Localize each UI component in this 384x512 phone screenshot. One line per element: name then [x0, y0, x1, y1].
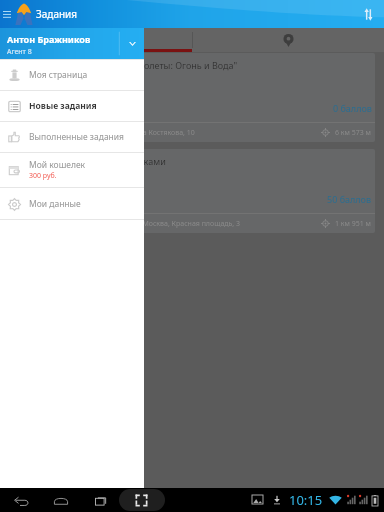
button[interactable]: Сфотографируйся с памятниками [9, 149, 375, 233]
button[interactable]: Мой кошелек [0, 153, 144, 187]
staticText: Антон Бражников [7, 33, 91, 45]
button[interactable] [0, 28, 192, 52]
button[interactable]: Sync [358, 4, 378, 24]
button[interactable]: Recent apps [90, 489, 112, 511]
button[interactable]: Антон Бражников [0, 28, 144, 59]
staticText: Агент 8 [7, 47, 32, 57]
staticText: 0 баллов [333, 102, 372, 114]
staticText: Мой кошелек [29, 159, 86, 171]
staticText: Москва, Тимирязевский район, улица Костя… [18, 128, 195, 138]
button[interactable]: Back [10, 489, 32, 511]
button[interactable]: Full screen [130, 489, 152, 511]
staticText: Новые задания [29, 100, 97, 112]
staticText: Российская Федерация, ЦАО, Арбат, Москва… [18, 219, 241, 229]
button[interactable]: Новый квест "Бумажные самолеты: Огонь и … [9, 53, 375, 142]
staticText: Моя страница [29, 69, 88, 81]
staticText: Сфотографируйся с памятниками [18, 155, 166, 167]
staticText: Новый квест "Бумажные самолеты: Огонь и … [18, 59, 238, 71]
button[interactable]: Новые задания [0, 91, 144, 121]
button[interactable]: Моя страница [0, 60, 144, 90]
staticText: Мои данные [29, 198, 81, 210]
staticText: 6 км 573 м [335, 128, 371, 138]
staticText: 10:15 [289, 491, 323, 509]
button[interactable]: Open navigation drawer [0, 7, 14, 21]
button[interactable]: Home [50, 489, 72, 511]
staticText: 1 км 951 м [335, 219, 371, 229]
staticText: 300 руб. [29, 171, 57, 181]
button[interactable]: Мои данные [0, 188, 144, 219]
staticText: 50 баллов [327, 193, 372, 205]
staticText: Задания [36, 7, 78, 21]
staticText: Выполненные задания [29, 131, 125, 143]
button[interactable]: Map [192, 28, 384, 52]
button[interactable]: Выполненные задания [0, 122, 144, 152]
